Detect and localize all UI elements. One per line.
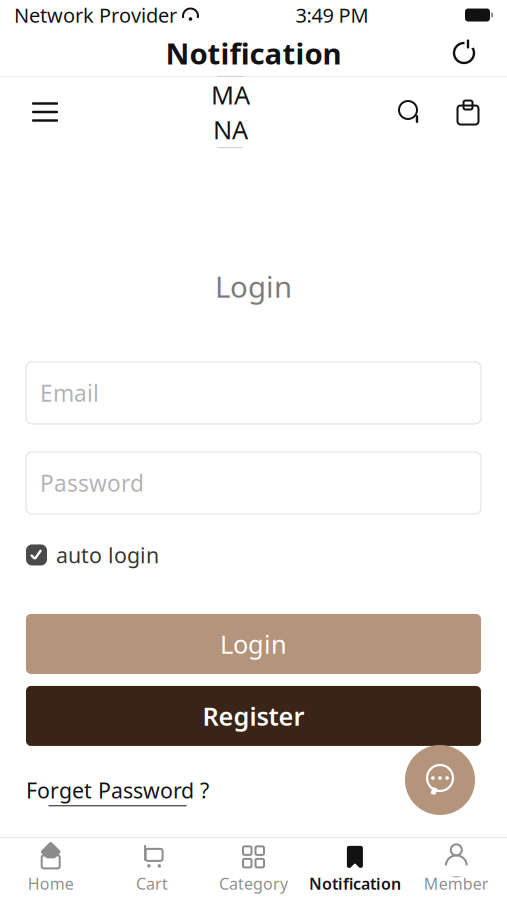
staticText: Home (28, 873, 74, 894)
button[interactable]: Cart (101, 839, 203, 899)
staticText: Email (40, 378, 99, 408)
button[interactable]: Search (393, 95, 427, 129)
button[interactable]: Forget Password ? (26, 776, 209, 806)
button[interactable]: Home (0, 839, 101, 899)
button[interactable]: auto login (0, 538, 507, 572)
button[interactable]: Menu (22, 91, 68, 133)
staticText: Network Provider (14, 2, 177, 28)
button[interactable]: Chat support (405, 745, 475, 815)
staticText: Notification (309, 873, 401, 894)
staticText: Member (424, 873, 489, 894)
staticText: Category (219, 873, 288, 894)
button[interactable]: Register (26, 686, 481, 746)
button[interactable]: Login (26, 614, 481, 674)
button[interactable]: Notification (304, 839, 406, 899)
staticText: Password (40, 468, 144, 498)
staticText: Forget Password ? (26, 776, 209, 804)
button[interactable]: Shopping bag (451, 95, 485, 129)
staticText: 3:49 PM (295, 2, 368, 28)
staticText: NA (213, 112, 248, 146)
staticText: Login (220, 627, 287, 661)
staticText: Register (202, 699, 304, 733)
button[interactable]: Member (406, 839, 507, 899)
staticText: MA (211, 78, 250, 111)
staticText: auto login (56, 541, 159, 569)
staticText: Cart (136, 873, 168, 894)
button[interactable]: Refresh (445, 34, 483, 72)
staticText: Login (215, 267, 292, 306)
button[interactable]: Category (203, 839, 304, 899)
staticText: Notification (165, 33, 341, 72)
